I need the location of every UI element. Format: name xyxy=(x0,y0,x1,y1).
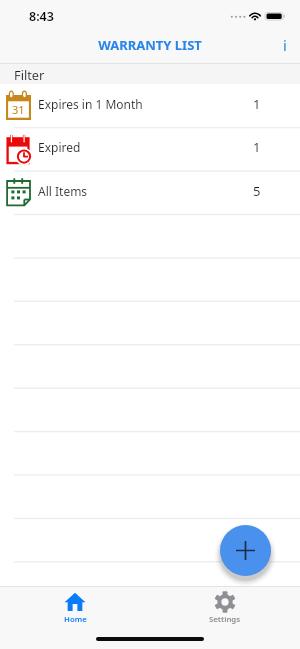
staticText: Filter xyxy=(14,66,45,83)
staticText: All Items xyxy=(38,183,253,199)
button[interactable]: Home xyxy=(0,587,150,649)
staticText: 1 xyxy=(253,95,261,113)
staticText: WARRANTY LIST xyxy=(0,36,300,54)
button[interactable]: Info xyxy=(270,30,300,60)
staticText: i xyxy=(283,36,287,55)
button[interactable]: 31 xyxy=(0,84,300,127)
staticText: Home xyxy=(64,614,87,625)
button[interactable]: Expired xyxy=(0,127,300,170)
staticText: Expires in 1 Month xyxy=(38,96,253,112)
staticText: 5 xyxy=(253,182,261,200)
staticText: Expired xyxy=(38,139,253,155)
staticText: 31 xyxy=(12,102,25,117)
button[interactable]: All Items xyxy=(0,171,300,214)
button[interactable]: Add new item xyxy=(220,525,271,576)
staticText: Settings xyxy=(209,614,241,625)
staticText: 8:43 xyxy=(29,8,54,25)
staticText: 1 xyxy=(253,138,261,156)
button[interactable]: Settings xyxy=(150,587,300,649)
